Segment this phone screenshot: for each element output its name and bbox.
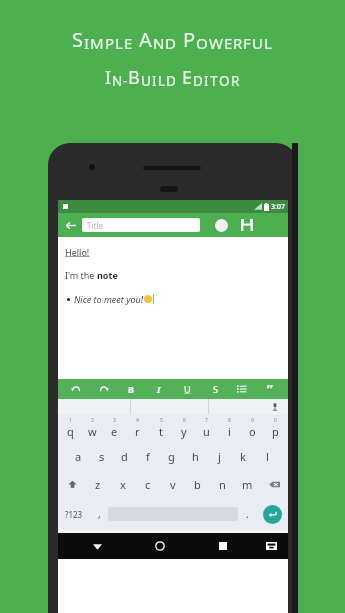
staticText: r [135, 424, 140, 439]
button[interactable]: S [205, 379, 225, 399]
button[interactable]: 9 [241, 414, 264, 442]
staticText: n [219, 477, 226, 492]
staticText: 1 [69, 417, 72, 424]
staticText: c [145, 477, 151, 492]
button[interactable]: s [90, 442, 113, 470]
staticText: t [159, 424, 163, 439]
button[interactable]: Home [128, 533, 191, 559]
button[interactable]: x [110, 470, 135, 498]
button[interactable]: Back [66, 533, 128, 559]
button[interactable]: h [183, 442, 207, 470]
button[interactable]: j [207, 442, 231, 470]
button[interactable]: 3 [103, 414, 126, 442]
staticText: w [88, 424, 97, 439]
button[interactable]: , [90, 498, 108, 530]
staticText: - [123, 72, 128, 90]
staticText: U [141, 72, 152, 90]
button[interactable]: Note colour [210, 214, 232, 236]
staticText: Title [87, 220, 103, 231]
button[interactable]: b [185, 470, 210, 498]
staticText: p [272, 424, 279, 439]
staticText: 9 [251, 417, 254, 424]
staticText: L [264, 33, 273, 53]
button[interactable]: l [255, 442, 279, 470]
staticText: B [128, 65, 141, 90]
button[interactable]: a [67, 442, 90, 470]
button[interactable]: Enter [256, 498, 288, 530]
staticText: b [194, 477, 201, 492]
staticText: M [90, 33, 105, 53]
staticText: D [193, 72, 204, 90]
button[interactable]: B [121, 379, 141, 399]
staticText: i [228, 424, 231, 439]
button[interactable]: Hide keyboard [254, 533, 288, 559]
button[interactable]: ?123 [58, 498, 90, 530]
staticText: W [209, 33, 224, 53]
button[interactable]: I [149, 379, 169, 399]
staticText: 3:07 [271, 202, 285, 212]
button[interactable]: 7 [195, 414, 218, 442]
button[interactable]: m [235, 470, 260, 498]
button[interactable]: Undo [66, 379, 86, 399]
staticText: k [240, 449, 246, 464]
staticText: F [243, 33, 252, 53]
button[interactable]: Back [58, 213, 82, 237]
button[interactable]: 0 [264, 414, 287, 442]
button[interactable]: Voice input [268, 400, 282, 414]
staticText: U [252, 33, 264, 53]
staticText: 7 [205, 417, 208, 424]
button[interactable]: Recents [191, 533, 254, 559]
button[interactable]: Title [82, 218, 200, 232]
button[interactable]: g [159, 442, 183, 470]
staticText: I [157, 383, 161, 395]
staticText: R [233, 33, 243, 53]
button[interactable]: v [160, 470, 185, 498]
staticText: D [165, 33, 177, 53]
staticText: 0 [274, 417, 277, 424]
staticText: Hello! [65, 246, 90, 258]
staticText: P [105, 33, 115, 53]
button[interactable]: 8 [218, 414, 241, 442]
button[interactable]: Bullet list [232, 379, 252, 399]
button[interactable]: c [135, 470, 160, 498]
staticText: I [84, 33, 90, 53]
button[interactable]: Shift [58, 470, 86, 498]
staticText: 5 [160, 417, 163, 424]
button[interactable]: f [136, 442, 159, 470]
button[interactable]: 5 [149, 414, 172, 442]
button[interactable]: Quote [260, 379, 280, 399]
button[interactable]: . [238, 498, 256, 530]
staticText: I [204, 72, 210, 90]
button[interactable]: Save [236, 214, 258, 236]
staticText: B [128, 383, 134, 395]
staticText: T [210, 72, 219, 90]
button[interactable]: 4 [126, 414, 149, 442]
staticText: u [203, 424, 210, 439]
staticText: v [170, 477, 176, 492]
staticText: Nice to meet you! [74, 293, 144, 305]
button[interactable]: d [113, 442, 136, 470]
staticText: E [124, 33, 133, 53]
staticText: x [120, 477, 126, 492]
button[interactable]: 6 [172, 414, 195, 442]
staticText: 3 [113, 417, 116, 424]
staticText: I [152, 72, 158, 90]
staticText: 4 [136, 417, 139, 424]
button[interactable]: Backspace [260, 470, 288, 498]
button[interactable]: U [177, 379, 197, 399]
staticText: note [97, 269, 118, 281]
staticText: A [139, 26, 153, 53]
staticText: E [224, 33, 233, 53]
button[interactable]: Redo [94, 379, 114, 399]
button[interactable]: k [231, 442, 255, 470]
button[interactable]: 1 [59, 414, 81, 442]
button[interactable]: n [210, 470, 235, 498]
staticText: O [196, 33, 209, 53]
staticText: h [192, 449, 199, 464]
button[interactable]: z [86, 470, 110, 498]
button[interactable]: 2 [81, 414, 103, 442]
staticText: L [158, 72, 166, 90]
staticText: d [121, 449, 128, 464]
